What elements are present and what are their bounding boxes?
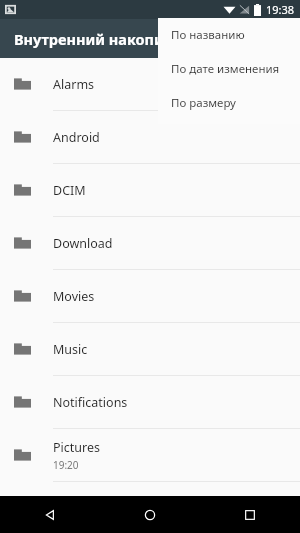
- button[interactable]: Notifications: [0, 376, 300, 428]
- staticText: DCIM: [53, 182, 86, 199]
- button[interactable]: По размеру: [158, 86, 300, 120]
- staticText: 19:20: [53, 458, 79, 472]
- staticText: По размеру: [171, 95, 236, 111]
- staticText: По дате изменения: [171, 61, 280, 77]
- button[interactable]: Music: [0, 323, 300, 375]
- staticText: Android: [53, 129, 100, 146]
- staticText: Download: [53, 235, 113, 252]
- staticText: Pictures: [53, 439, 100, 456]
- button[interactable]: Movies: [0, 270, 300, 322]
- staticText: Music: [53, 341, 88, 358]
- staticText: Movies: [53, 288, 95, 305]
- button[interactable]: Home: [100, 496, 200, 533]
- button[interactable]: Download: [0, 217, 300, 269]
- button[interactable]: По названию: [158, 18, 300, 52]
- staticText: Внутренний накопитель: [14, 29, 197, 49]
- button[interactable]: Back: [0, 496, 100, 533]
- staticText: Alarms: [53, 76, 95, 93]
- staticText: Notifications: [53, 394, 128, 411]
- button[interactable]: Recent apps: [200, 496, 300, 533]
- button[interactable]: DCIM: [0, 164, 300, 216]
- staticText: 19:38: [266, 2, 295, 17]
- button[interactable]: Android: [0, 111, 300, 163]
- staticText: По названию: [171, 27, 245, 43]
- button[interactable]: Pictures: [0, 429, 300, 481]
- button[interactable]: По дате изменения: [158, 52, 300, 86]
- button[interactable]: Alarms: [0, 58, 300, 110]
